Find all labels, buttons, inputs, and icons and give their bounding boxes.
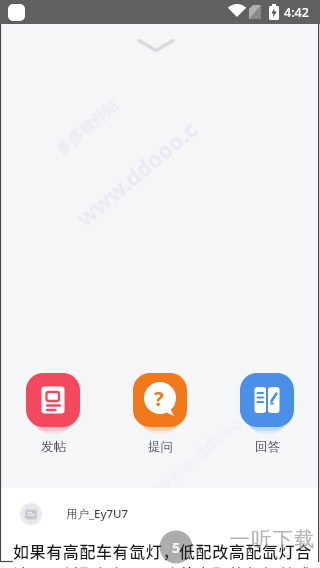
staticText: 4:42 <box>284 4 309 21</box>
staticText: 用户_Ey7U7 <box>66 506 129 522</box>
button[interactable]: 用户_Ey7U7 <box>0 492 320 532</box>
button[interactable] <box>240 373 294 427</box>
staticText: ? <box>154 385 164 412</box>
button[interactable]: 回答 <box>240 437 294 457</box>
staticText: www.ddooo.com <box>150 382 281 499</box>
staticText: 发帖 <box>41 439 66 455</box>
staticText: 一听下载 <box>229 527 315 552</box>
staticText: 提问 <box>148 439 173 455</box>
button[interactable]: 如果有高配车有氙灯，低配改高配氙灯合 <box>13 539 320 568</box>
staticText: 法吗？低配氙灯可以改装高配的氙灯总成 <box>13 562 312 568</box>
button[interactable]: 提问 <box>133 437 187 457</box>
button[interactable] <box>132 34 180 58</box>
staticText: 回答 <box>255 439 280 455</box>
staticText: 如果有高配车有氙灯，低配改高配氙灯合 <box>13 539 312 562</box>
button[interactable]: 发帖 <box>26 437 80 457</box>
button[interactable] <box>133 373 187 427</box>
button[interactable] <box>26 373 80 427</box>
staticText: 5 <box>172 538 181 557</box>
